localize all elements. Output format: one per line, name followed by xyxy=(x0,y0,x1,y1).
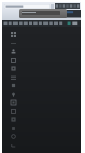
button[interactable]: Address field xyxy=(4,4,50,9)
button[interactable]: Item 13 xyxy=(10,133,17,140)
button[interactable]: Item 11 xyxy=(10,116,17,123)
button[interactable]: Item 10 xyxy=(10,108,17,115)
button[interactable]: Item 2 xyxy=(10,40,17,47)
button[interactable]: Menu popup xyxy=(19,9,67,18)
button[interactable]: Item 5 xyxy=(10,65,17,72)
button[interactable]: Item 12 xyxy=(10,125,17,132)
button[interactable]: Item 8 xyxy=(10,91,17,98)
button[interactable]: Item 1 xyxy=(10,31,17,38)
button[interactable]: Item 6 xyxy=(10,74,17,81)
button[interactable]: Item 7 xyxy=(10,82,17,89)
button[interactable]: Item 4 xyxy=(10,57,17,64)
button[interactable]: Item 3 xyxy=(10,48,17,55)
button[interactable]: Item 9 xyxy=(10,99,17,106)
button[interactable]: Toolbar actions xyxy=(55,3,80,9)
button[interactable]: Item 14 xyxy=(10,142,17,149)
